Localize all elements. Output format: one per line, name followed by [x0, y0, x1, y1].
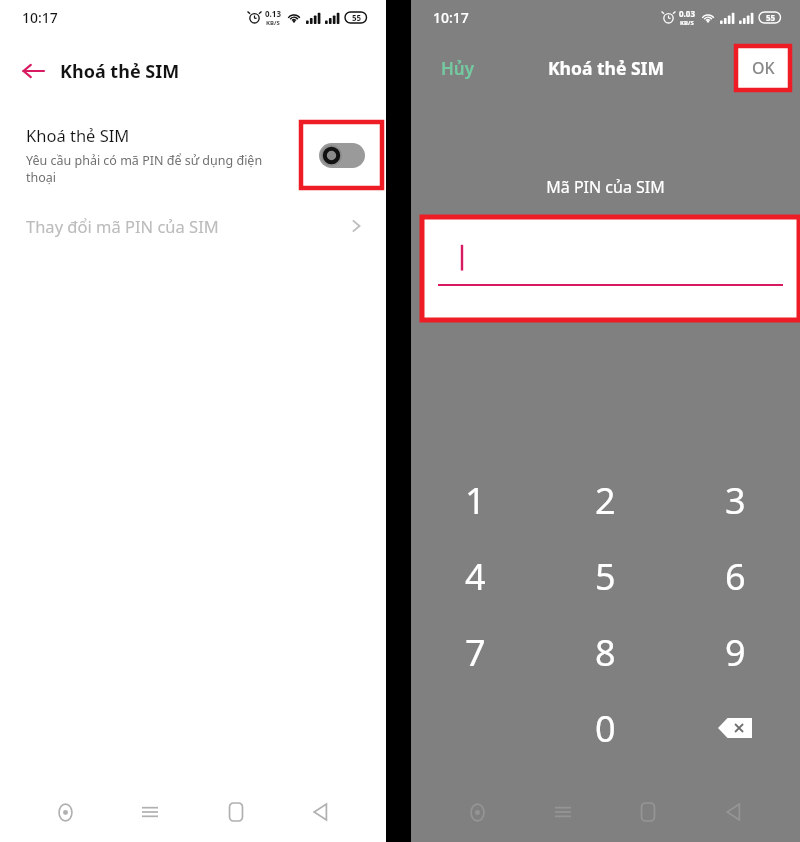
button[interactable]: OK	[736, 46, 790, 90]
staticText: 5	[595, 552, 616, 601]
button[interactable]: Thay đổi mã PIN của SIM	[0, 204, 386, 248]
staticText: 1	[465, 476, 486, 525]
button[interactable]: 0	[540, 690, 670, 766]
staticText: 7	[465, 628, 486, 677]
button[interactable]: Menu	[543, 792, 583, 832]
button[interactable]: SIM PIN input	[422, 217, 799, 320]
button[interactable]: Menu	[130, 792, 170, 832]
staticText: 3	[725, 476, 746, 525]
button[interactable]: Backspace	[670, 690, 800, 766]
staticText: 6	[725, 552, 746, 601]
staticText: OK	[752, 57, 775, 79]
button[interactable]: Assistant	[457, 792, 497, 832]
staticText: Yêu cầu phải có mã PIN để sử dụng điện t…	[26, 152, 286, 186]
staticText: Khoá thẻ SIM	[548, 56, 664, 80]
staticText: Mã PIN của SIM	[411, 176, 800, 198]
button[interactable]: SIM lock toggle	[319, 143, 365, 168]
button[interactable]: Back	[12, 50, 54, 92]
staticText: 4	[465, 552, 486, 601]
staticText: 0	[595, 704, 616, 753]
staticText: 9	[725, 628, 746, 677]
button[interactable]: 1	[411, 462, 540, 538]
staticText: 0.03	[679, 8, 695, 19]
staticText: Khoá thẻ SIM	[26, 124, 130, 146]
button[interactable]: 9	[670, 614, 800, 690]
button[interactable]: 4	[411, 538, 540, 614]
button[interactable]: 7	[411, 614, 540, 690]
button[interactable]: Home	[628, 792, 668, 832]
button[interactable]: Back	[301, 792, 341, 832]
staticText: 10:17	[433, 8, 469, 27]
button[interactable]: 2	[540, 462, 670, 538]
staticText: 10:17	[22, 8, 58, 27]
staticText: Khoá thẻ SIM	[60, 59, 180, 84]
staticText: 55	[352, 12, 362, 23]
button[interactable]: Hủy	[435, 51, 481, 86]
button[interactable]: Home	[216, 792, 256, 832]
button[interactable]: Assistant	[45, 792, 85, 832]
staticText: 55	[766, 12, 776, 23]
staticText: 0.13	[265, 8, 281, 19]
staticText: KB/S	[266, 19, 280, 27]
staticText: Thay đổi mã PIN của SIM	[26, 215, 348, 237]
staticText: Hủy	[441, 57, 475, 80]
staticText: KB/S	[680, 19, 694, 27]
staticText: 8	[595, 628, 616, 677]
button[interactable]: 6	[670, 538, 800, 614]
button[interactable]: Khoá thẻ SIM	[0, 116, 386, 194]
button[interactable]: Back	[714, 792, 754, 832]
staticText: 2	[595, 476, 616, 525]
button[interactable]: 3	[670, 462, 800, 538]
button[interactable]: 8	[540, 614, 670, 690]
button[interactable]: 5	[540, 538, 670, 614]
